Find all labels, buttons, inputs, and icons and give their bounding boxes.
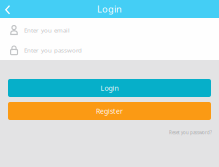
button[interactable]: Login <box>8 79 211 97</box>
staticText: Enter you password <box>24 46 82 54</box>
staticText: Login <box>100 83 118 93</box>
staticText: Register <box>96 106 123 116</box>
staticText: Enter you email <box>24 26 70 34</box>
button[interactable]: Enter you email <box>0 20 219 40</box>
button[interactable]: Back <box>0 0 26 18</box>
button[interactable]: Reset you password? <box>167 125 214 139</box>
staticText: Reset you password? <box>169 129 212 135</box>
button[interactable]: Enter you password <box>0 40 219 60</box>
button[interactable]: Register <box>8 102 211 120</box>
staticText: Login <box>97 3 122 15</box>
